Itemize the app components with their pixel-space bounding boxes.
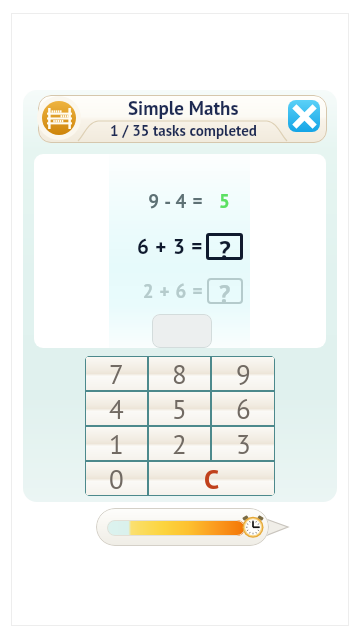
- button[interactable]: 8: [149, 357, 210, 390]
- button[interactable]: 1: [86, 427, 147, 460]
- staticText: 2: [172, 427, 187, 460]
- staticText: 8: [172, 357, 187, 390]
- staticText: ?: [219, 278, 231, 304]
- button[interactable]: 5: [149, 392, 210, 425]
- staticText: 5: [219, 189, 230, 214]
- button[interactable]: 9: [212, 357, 274, 390]
- staticText: 4: [109, 392, 124, 425]
- staticText: 6 + 3 =: [136, 233, 203, 260]
- staticText: C: [204, 462, 220, 495]
- staticText: 0: [109, 462, 124, 495]
- staticText: 9: [236, 357, 251, 390]
- staticText: 2 + 6 =: [142, 279, 203, 304]
- staticText: Simple Maths: [128, 96, 239, 121]
- button[interactable]: 2: [149, 427, 210, 460]
- staticText: 1 / 35 tasks completed: [110, 121, 257, 140]
- staticText: 1: [109, 427, 124, 460]
- button[interactable]: C: [149, 462, 274, 495]
- staticText: 6: [236, 392, 251, 425]
- staticText: 9 - 4 =: [148, 189, 203, 214]
- staticText: 3: [236, 427, 251, 460]
- button[interactable]: 4: [86, 392, 147, 425]
- button[interactable]: Close: [288, 100, 320, 132]
- staticText: 5: [172, 392, 187, 425]
- button[interactable]: Menu: [37, 96, 81, 140]
- staticText: 7: [109, 357, 124, 390]
- button[interactable]: 3: [212, 427, 274, 460]
- button[interactable]: 7: [86, 357, 147, 390]
- button[interactable]: 6: [212, 392, 274, 425]
- button[interactable]: 0: [86, 462, 147, 495]
- staticText: ?: [219, 233, 231, 260]
- button[interactable]: Answer: [152, 314, 212, 348]
